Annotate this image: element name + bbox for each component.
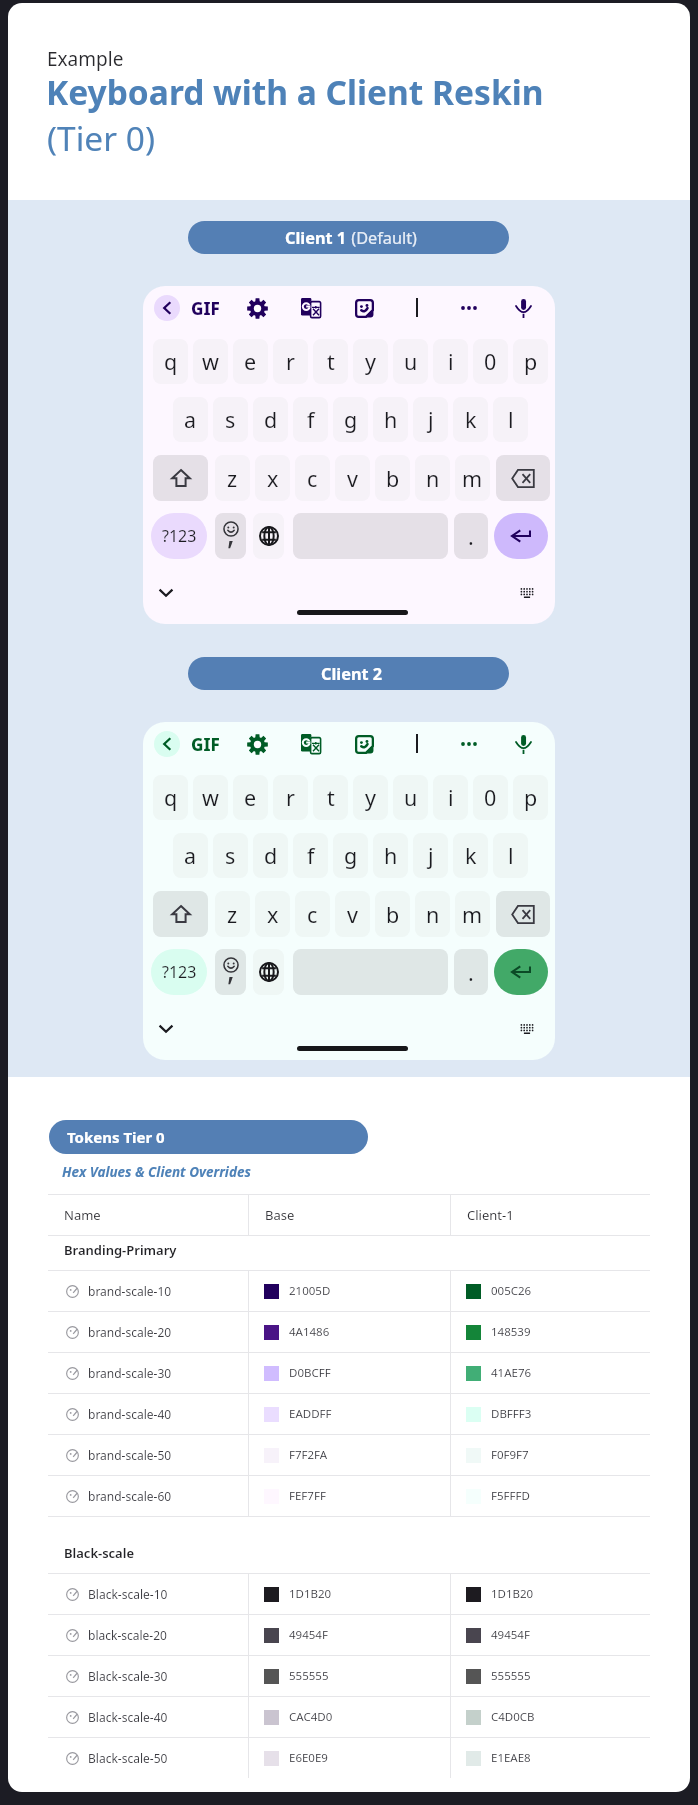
button[interactable]: w bbox=[193, 775, 228, 820]
button[interactable]: brand-scale-30 bbox=[48, 1353, 650, 1393]
button[interactable]: Stickers bbox=[352, 296, 376, 320]
button[interactable]: e bbox=[233, 339, 268, 384]
button[interactable]: c bbox=[295, 891, 330, 937]
button[interactable]: 0 bbox=[473, 339, 508, 384]
button[interactable]: Shift bbox=[153, 455, 208, 501]
button[interactable]: a bbox=[173, 833, 208, 878]
button[interactable]: Shift bbox=[153, 891, 208, 937]
button[interactable]: n bbox=[415, 891, 450, 937]
button[interactable]: v bbox=[335, 455, 370, 501]
button[interactable]: l bbox=[493, 833, 528, 878]
button[interactable]: w bbox=[193, 339, 228, 384]
button[interactable]: s bbox=[213, 833, 248, 878]
button[interactable]: black-scale-20 bbox=[48, 1615, 650, 1655]
button[interactable]: Tokens Tier 0 bbox=[49, 1120, 368, 1154]
button[interactable]: Enter bbox=[494, 949, 548, 995]
button[interactable]: k bbox=[453, 833, 488, 878]
button[interactable]: q bbox=[153, 339, 188, 384]
button[interactable]: . bbox=[454, 949, 488, 995]
button[interactable]: More bbox=[457, 296, 481, 320]
button[interactable]: brand-scale-60 bbox=[48, 1476, 650, 1516]
button[interactable]: x bbox=[255, 455, 290, 501]
button[interactable]: c bbox=[295, 455, 330, 501]
button[interactable]: Translate bbox=[299, 732, 323, 756]
button[interactable]: Keyboard layout bbox=[515, 580, 539, 604]
button[interactable]: brand-scale-20 bbox=[48, 1312, 650, 1352]
button[interactable]: d bbox=[253, 833, 288, 878]
button[interactable]: Black-scale-30 bbox=[48, 1656, 650, 1696]
button[interactable]: e bbox=[233, 775, 268, 820]
button[interactable]: j bbox=[413, 833, 448, 878]
button[interactable]: y bbox=[353, 339, 388, 384]
button[interactable]: brand-scale-10 bbox=[48, 1271, 650, 1311]
button[interactable]: u bbox=[393, 339, 428, 384]
button[interactable]: s bbox=[213, 397, 248, 442]
button[interactable]: d bbox=[253, 397, 288, 442]
button[interactable]: v bbox=[335, 891, 370, 937]
button[interactable]: r bbox=[273, 339, 308, 384]
button[interactable]: Client 1 bbox=[188, 221, 509, 254]
button[interactable]: g bbox=[333, 833, 368, 878]
button[interactable]: z bbox=[215, 455, 250, 501]
button[interactable]: b bbox=[375, 455, 410, 501]
button[interactable]: Black-scale-50 bbox=[48, 1738, 650, 1778]
button[interactable]: Language bbox=[253, 513, 284, 559]
button[interactable]: b bbox=[375, 891, 410, 937]
button[interactable]: Back bbox=[154, 295, 180, 321]
button[interactable]: a bbox=[173, 397, 208, 442]
button[interactable]: m bbox=[455, 455, 490, 501]
button[interactable]: t bbox=[313, 775, 348, 820]
button[interactable]: r bbox=[273, 775, 308, 820]
button[interactable]: Black-scale-40 bbox=[48, 1697, 650, 1737]
button[interactable]: Voice input bbox=[511, 732, 535, 756]
button[interactable]: brand-scale-40 bbox=[48, 1394, 650, 1434]
button[interactable]: Language bbox=[253, 949, 284, 995]
button[interactable]: z bbox=[215, 891, 250, 937]
button[interactable]: Black-scale-10 bbox=[48, 1574, 650, 1614]
button[interactable]: q bbox=[153, 775, 188, 820]
button[interactable]: Emoji bbox=[215, 513, 246, 559]
button[interactable]: Stickers bbox=[352, 732, 376, 756]
button[interactable]: Settings bbox=[245, 732, 269, 756]
button[interactable]: Settings bbox=[245, 296, 269, 320]
button[interactable]: GIF bbox=[185, 732, 225, 756]
button[interactable]: u bbox=[393, 775, 428, 820]
button[interactable]: brand-scale-50 bbox=[48, 1435, 650, 1475]
button[interactable]: Backspace bbox=[496, 455, 550, 501]
button[interactable]: y bbox=[353, 775, 388, 820]
button[interactable]: p bbox=[513, 339, 548, 384]
button[interactable]: l bbox=[493, 397, 528, 442]
button[interactable]: . bbox=[454, 513, 488, 559]
button[interactable]: n bbox=[415, 455, 450, 501]
button[interactable]: j bbox=[413, 397, 448, 442]
button[interactable]: Enter bbox=[494, 513, 548, 559]
button[interactable]: Client 2 bbox=[188, 657, 509, 690]
button[interactable]: h bbox=[373, 833, 408, 878]
button[interactable]: x bbox=[255, 891, 290, 937]
button[interactable]: Emoji bbox=[215, 949, 246, 995]
button[interactable]: t bbox=[313, 339, 348, 384]
button[interactable]: Hide keyboard bbox=[154, 580, 178, 604]
button[interactable]: i bbox=[433, 775, 468, 820]
button[interactable]: i bbox=[433, 339, 468, 384]
button[interactable]: ?123 bbox=[151, 513, 207, 559]
button[interactable]: p bbox=[513, 775, 548, 820]
button[interactable]: More bbox=[457, 732, 481, 756]
button[interactable]: Backspace bbox=[496, 891, 550, 937]
button[interactable]: Translate bbox=[299, 296, 323, 320]
button[interactable]: Keyboard layout bbox=[515, 1016, 539, 1040]
button[interactable]: g bbox=[333, 397, 368, 442]
button[interactable]: ?123 bbox=[151, 949, 207, 995]
button[interactable]: GIF bbox=[185, 296, 225, 320]
button[interactable]: f bbox=[293, 397, 328, 442]
button[interactable]: f bbox=[293, 833, 328, 878]
button[interactable]: k bbox=[453, 397, 488, 442]
button[interactable]: Voice input bbox=[511, 296, 535, 320]
button[interactable]: Hide keyboard bbox=[154, 1016, 178, 1040]
button[interactable]: Back bbox=[154, 731, 180, 757]
button[interactable]: 0 bbox=[473, 775, 508, 820]
button[interactable]: h bbox=[373, 397, 408, 442]
button[interactable]: m bbox=[455, 891, 490, 937]
